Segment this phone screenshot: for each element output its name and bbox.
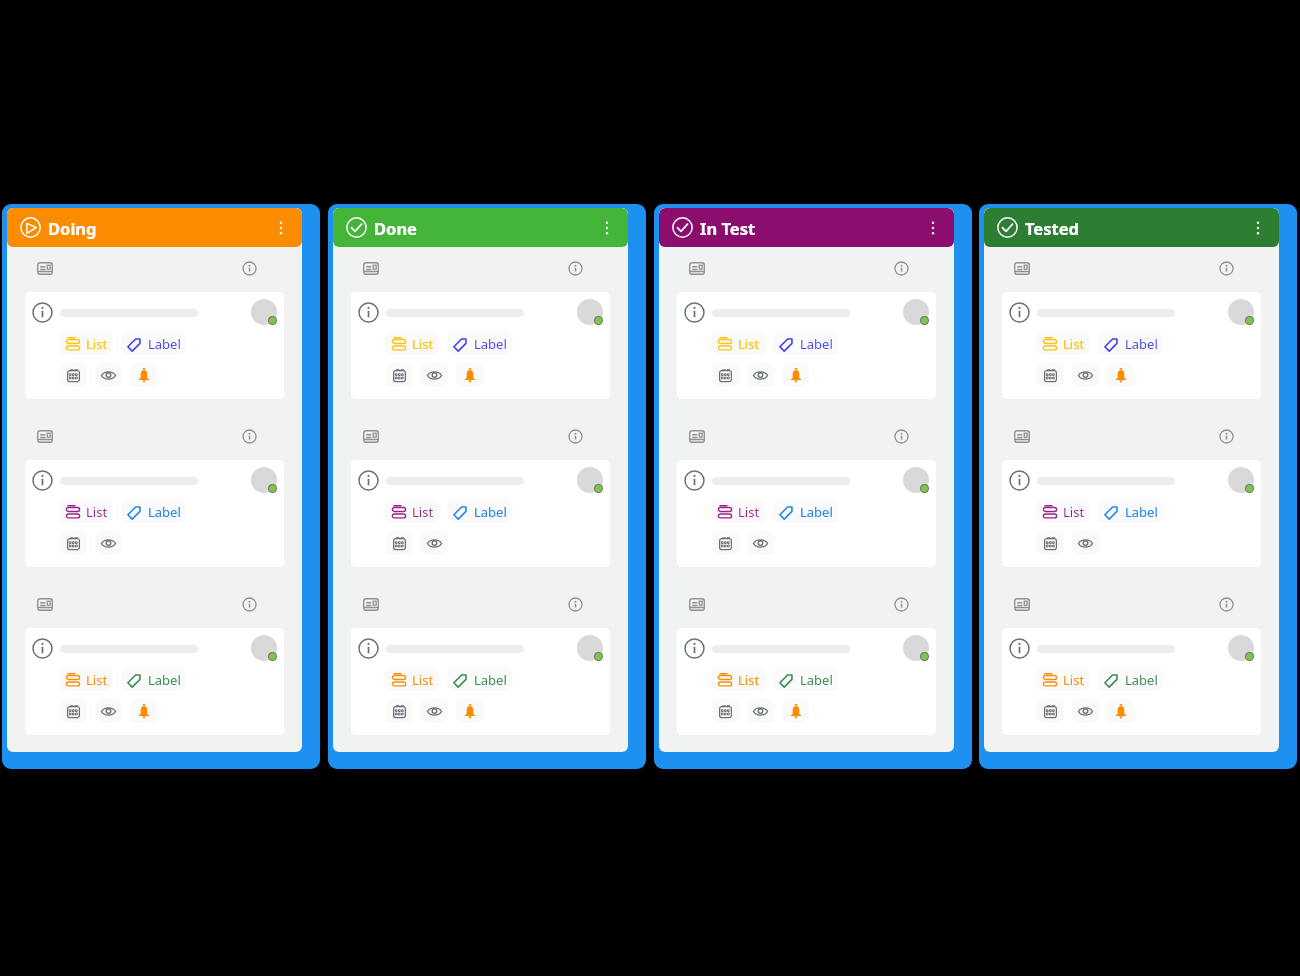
button[interactable]: List (385, 668, 439, 691)
button[interactable]: Card details (360, 257, 382, 279)
button[interactable]: Card details (360, 593, 382, 615)
button[interactable]: Watch (421, 363, 448, 387)
button[interactable]: Notifications (782, 699, 809, 723)
button[interactable]: Task info (1009, 470, 1030, 491)
button[interactable]: Task info (1002, 460, 1261, 567)
button[interactable]: Assignee (251, 299, 277, 325)
button[interactable]: Task info (684, 302, 705, 323)
button[interactable]: Done (333, 208, 628, 247)
button[interactable]: List (711, 668, 765, 691)
button[interactable]: Task info (1009, 302, 1030, 323)
button[interactable]: Label (1098, 332, 1163, 355)
button[interactable]: Task info (25, 628, 284, 735)
button[interactable]: Card details (34, 257, 56, 279)
button[interactable]: Task info (1002, 628, 1261, 735)
button[interactable]: Assignee (251, 635, 277, 661)
button[interactable]: More options (1250, 215, 1266, 241)
button[interactable]: List (711, 332, 765, 355)
button[interactable]: Column info (238, 593, 260, 615)
button[interactable]: Watch (95, 363, 122, 387)
button[interactable]: Card details (34, 425, 56, 447)
button[interactable]: Task info (32, 302, 53, 323)
button[interactable]: Assignee (251, 467, 277, 493)
button[interactable]: Card details (1011, 425, 1033, 447)
button[interactable]: Label (773, 500, 838, 523)
button[interactable]: Task info (1009, 638, 1030, 659)
button[interactable]: Due date (386, 699, 413, 723)
button[interactable]: Due date (386, 531, 413, 555)
button[interactable]: Assignee (903, 635, 929, 661)
button[interactable]: Due date (60, 699, 87, 723)
button[interactable]: List (385, 500, 439, 523)
button[interactable]: Column info (1215, 257, 1237, 279)
button[interactable]: Column info (564, 257, 586, 279)
button[interactable]: Task info (351, 628, 610, 735)
button[interactable]: Card details (686, 425, 708, 447)
button[interactable]: List (59, 500, 113, 523)
button[interactable]: Task info (25, 460, 284, 567)
button[interactable]: Label (1098, 500, 1163, 523)
button[interactable]: Label (447, 332, 512, 355)
button[interactable]: Label (447, 500, 512, 523)
button[interactable]: Label (447, 668, 512, 691)
button[interactable]: Label (121, 500, 186, 523)
button[interactable]: In Test (659, 208, 954, 247)
button[interactable]: More options (599, 215, 615, 241)
button[interactable]: Assignee (903, 299, 929, 325)
button[interactable]: Task info (684, 470, 705, 491)
button[interactable]: Watch (421, 531, 448, 555)
button[interactable]: Column info (1215, 593, 1237, 615)
button[interactable]: Column info (238, 425, 260, 447)
button[interactable]: More options (273, 215, 289, 241)
button[interactable]: Notifications (130, 699, 157, 723)
button[interactable]: Watch (747, 531, 774, 555)
button[interactable]: Column info (564, 425, 586, 447)
button[interactable]: Column info (238, 257, 260, 279)
button[interactable]: Task info (351, 460, 610, 567)
button[interactable]: List (711, 500, 765, 523)
button[interactable]: Task info (1002, 292, 1261, 399)
button[interactable]: Doing (7, 208, 302, 247)
button[interactable]: Card details (1011, 593, 1033, 615)
button[interactable]: Task info (358, 470, 379, 491)
button[interactable]: Watch (747, 363, 774, 387)
button[interactable]: Notifications (456, 363, 483, 387)
button[interactable]: Task info (25, 292, 284, 399)
button[interactable]: Label (121, 332, 186, 355)
button[interactable]: List (1036, 500, 1090, 523)
button[interactable]: Due date (60, 531, 87, 555)
button[interactable]: Due date (1037, 531, 1064, 555)
button[interactable]: Assignee (577, 635, 603, 661)
button[interactable]: Label (773, 332, 838, 355)
button[interactable]: Watch (95, 699, 122, 723)
button[interactable]: Task info (351, 292, 610, 399)
button[interactable]: Task info (677, 460, 936, 567)
button[interactable]: Card details (360, 425, 382, 447)
button[interactable]: Task info (358, 638, 379, 659)
button[interactable]: List (1036, 668, 1090, 691)
button[interactable]: Label (1098, 668, 1163, 691)
button[interactable]: Card details (686, 257, 708, 279)
button[interactable]: Watch (1072, 699, 1099, 723)
button[interactable]: List (1036, 332, 1090, 355)
button[interactable]: Card details (34, 593, 56, 615)
button[interactable]: Assignee (903, 467, 929, 493)
button[interactable]: List (59, 332, 113, 355)
button[interactable]: Due date (1037, 699, 1064, 723)
button[interactable]: Watch (1072, 531, 1099, 555)
button[interactable]: Card details (686, 593, 708, 615)
button[interactable]: List (385, 332, 439, 355)
button[interactable]: Due date (712, 531, 739, 555)
button[interactable]: Watch (1072, 363, 1099, 387)
button[interactable]: Column info (890, 593, 912, 615)
button[interactable]: Column info (564, 593, 586, 615)
button[interactable]: Notifications (1107, 699, 1134, 723)
button[interactable]: Assignee (1228, 467, 1254, 493)
button[interactable]: List (59, 668, 113, 691)
button[interactable]: Watch (747, 699, 774, 723)
button[interactable]: Notifications (782, 363, 809, 387)
button[interactable]: Label (121, 668, 186, 691)
button[interactable]: Task info (32, 638, 53, 659)
button[interactable]: Assignee (577, 299, 603, 325)
button[interactable]: Task info (32, 470, 53, 491)
